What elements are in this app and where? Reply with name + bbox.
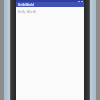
staticText: HelloWorld: [18, 3, 34, 7]
button[interactable]: HelloWorld: [16, 2, 84, 7]
staticText: Hello, World!: [18, 10, 37, 14]
